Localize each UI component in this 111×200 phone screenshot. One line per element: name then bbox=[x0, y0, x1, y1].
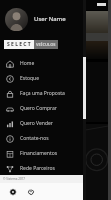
staticText: Estoque bbox=[20, 75, 39, 82]
button[interactable]: Contate-nos bbox=[0, 131, 83, 146]
button[interactable]: Power bbox=[24, 185, 37, 198]
button[interactable]: Quero Vender bbox=[0, 116, 83, 131]
staticText: Quero Vender bbox=[20, 120, 53, 127]
button[interactable]: Faça uma Proposta bbox=[0, 86, 83, 101]
staticText: Faça uma Proposta bbox=[20, 90, 65, 97]
staticText: Home bbox=[20, 60, 35, 67]
staticText: Quero Comprar bbox=[20, 105, 57, 112]
staticText: © Sistema 2017 bbox=[3, 177, 26, 181]
button[interactable]: S E L E C T bbox=[4, 40, 58, 49]
button[interactable]: Rede Parceiros bbox=[0, 161, 83, 176]
button[interactable]: Financiamentos bbox=[0, 146, 83, 161]
button[interactable]: Settings bbox=[6, 185, 19, 198]
staticText: VEÍCULOS bbox=[36, 42, 56, 47]
button[interactable]: Quero Comprar bbox=[0, 101, 83, 116]
button[interactable]: Estoque bbox=[0, 71, 83, 86]
staticText: S E L E C T bbox=[7, 41, 31, 48]
button[interactable]: Home bbox=[0, 56, 83, 71]
staticText: Rede Parceiros bbox=[20, 165, 55, 172]
staticText: Contate-nos bbox=[20, 135, 49, 142]
staticText: Financiamentos bbox=[20, 150, 58, 157]
button[interactable]: User Name bbox=[0, 4, 83, 34]
staticText: User Name bbox=[34, 15, 66, 23]
